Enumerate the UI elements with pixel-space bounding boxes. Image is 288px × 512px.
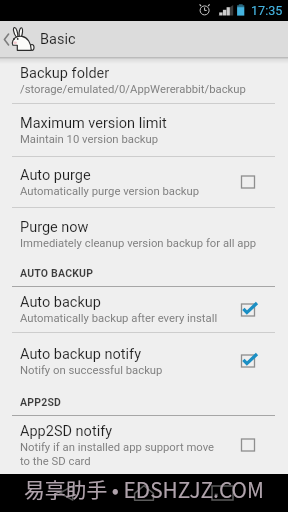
button[interactable]: Home	[116, 474, 172, 512]
button[interactable]: Checked	[228, 287, 268, 332]
staticText: Automatically purge version backup	[20, 185, 200, 198]
staticText: Backup folder	[20, 65, 110, 82]
staticText: /storage/emulated/0/AppWererabbit/backup	[20, 83, 246, 96]
button[interactable]: Backup folder	[0, 57, 288, 103]
button[interactable]: Purge now	[0, 208, 288, 260]
button[interactable]: App2SD notify	[0, 416, 288, 474]
staticText: Notify if an installed app support move …	[20, 441, 215, 468]
staticText: Immediately cleanup version backup for a…	[20, 237, 257, 250]
staticText: Auto backup notify	[20, 346, 141, 363]
button[interactable]: Auto backup notify	[0, 333, 288, 389]
staticText: App2SD notify	[20, 423, 113, 440]
staticText: 17:35	[251, 3, 283, 18]
button[interactable]: Back	[38, 474, 94, 512]
button[interactable]: Navigate up	[0, 21, 40, 57]
button[interactable]: Auto purge	[0, 157, 288, 207]
staticText: Automatically backup after every install	[20, 312, 218, 325]
button[interactable]: Maximum version limit	[0, 104, 288, 156]
button[interactable]: Unchecked	[228, 416, 268, 474]
staticText: APP2SD	[20, 396, 62, 408]
staticText: Auto purge	[20, 167, 91, 184]
button[interactable]: Unchecked	[228, 157, 268, 207]
staticText: Maximum version limit	[20, 115, 167, 132]
button[interactable]: Recents	[194, 474, 250, 512]
staticText: Purge now	[20, 219, 89, 236]
staticText: Maintain 10 version backup	[20, 133, 159, 146]
button[interactable]: Auto backup	[0, 287, 288, 332]
staticText: Basic	[40, 31, 76, 48]
staticText: Auto backup	[20, 294, 101, 311]
button[interactable]: Checked	[228, 333, 268, 389]
staticText: 易享助手 • EDSHZJZ.COM	[24, 474, 264, 504]
staticText: AUTO BACKUP	[20, 267, 94, 279]
staticText: Notify on successful backup	[20, 364, 163, 377]
